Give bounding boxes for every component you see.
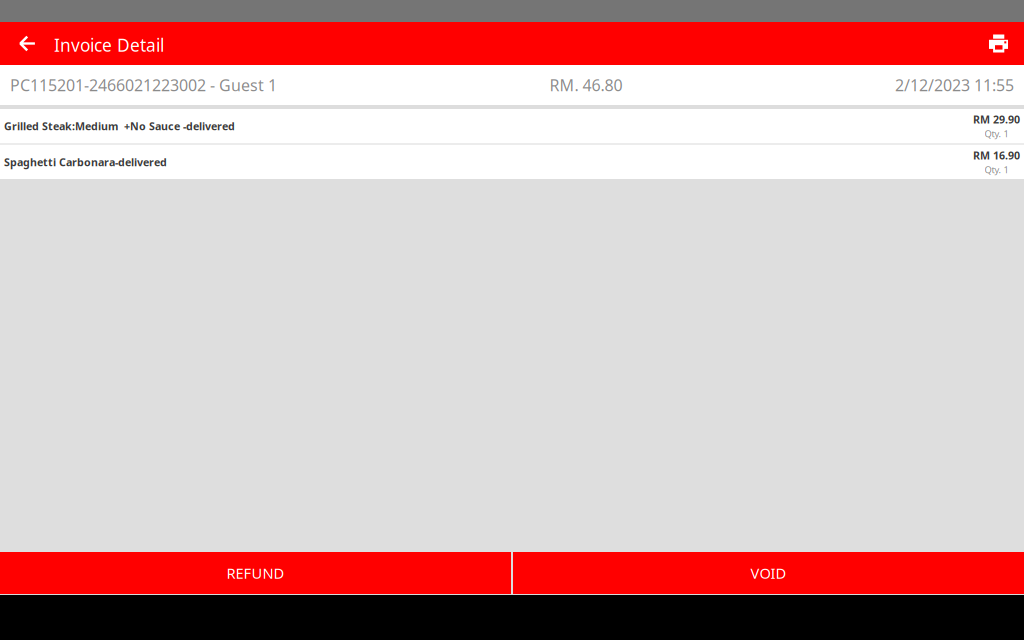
staticText: RM. 46.80 (549, 74, 622, 96)
staticText: Invoice Detail (54, 33, 164, 56)
button[interactable]: Back (0, 22, 54, 65)
staticText: Qty. 1 (984, 163, 1008, 176)
staticText: VOID (750, 563, 786, 583)
staticText: 2/12/2023 11:55 (895, 74, 1014, 96)
button[interactable]: Print (973, 22, 1024, 65)
staticText: REFUND (226, 563, 284, 583)
button[interactable]: VOID (513, 552, 1024, 594)
button[interactable]: Grilled Steak:Medium +No Sauce -delivere… (0, 109, 1024, 143)
button[interactable]: Spaghetti Carbonara-delivered (0, 145, 1024, 179)
staticText: RM 29.90 (973, 112, 1020, 126)
staticText: Spaghetti Carbonara-delivered (4, 155, 167, 169)
staticText: Qty. 1 (984, 127, 1008, 140)
staticText: RM 16.90 (973, 148, 1020, 162)
staticText: Grilled Steak:Medium +No Sauce -delivere… (4, 119, 235, 133)
staticText: PC115201-2466021223002 - Guest 1 (10, 74, 277, 96)
button[interactable]: REFUND (0, 552, 511, 594)
